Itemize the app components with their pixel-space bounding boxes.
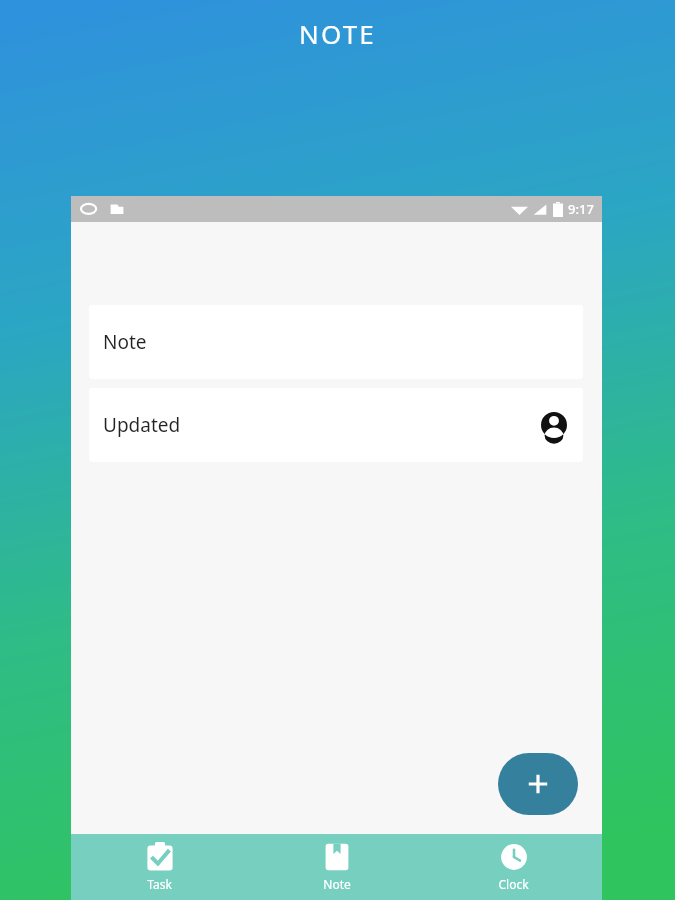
- button[interactable]: Add note: [498, 753, 578, 815]
- button[interactable]: Updated: [89, 388, 583, 462]
- button[interactable]: Account: [539, 410, 569, 440]
- staticText: Note: [103, 329, 147, 355]
- staticText: Note: [323, 876, 351, 892]
- staticText: NOTE: [299, 16, 376, 51]
- staticText: 9:17: [568, 200, 594, 218]
- button[interactable]: Clock: [425, 834, 602, 900]
- button[interactable]: Task: [71, 834, 248, 900]
- staticText: Task: [147, 876, 172, 892]
- staticText: Clock: [498, 876, 529, 892]
- button[interactable]: Note: [248, 834, 425, 900]
- staticText: Updated: [103, 412, 181, 438]
- button[interactable]: Note: [89, 305, 583, 379]
